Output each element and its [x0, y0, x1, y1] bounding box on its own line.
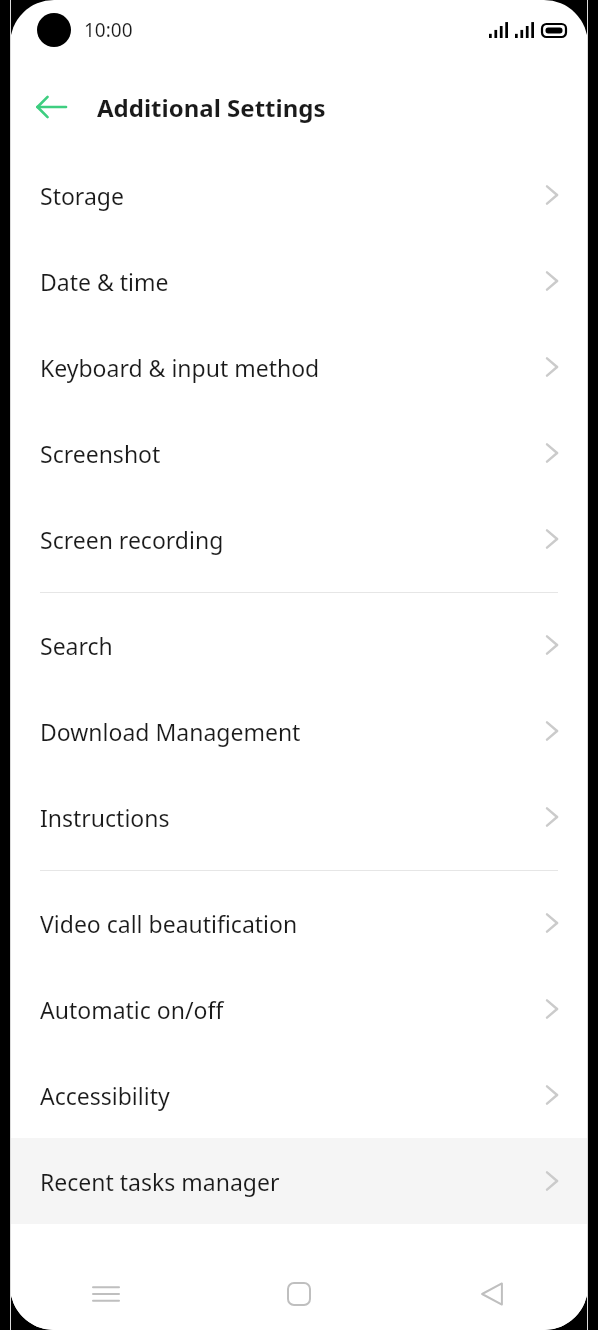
button[interactable]: Screen recording — [10, 496, 588, 582]
button[interactable]: Recent tasks manager — [10, 1138, 588, 1224]
button[interactable]: Video call beautification — [10, 880, 588, 966]
staticText: Keyboard & input method — [40, 352, 546, 383]
button[interactable]: Back — [26, 82, 76, 132]
button[interactable]: Instructions — [10, 774, 588, 860]
button[interactable]: Download Management — [10, 688, 588, 774]
button[interactable]: Keyboard & input method — [10, 324, 588, 410]
staticText: Additional Settings — [97, 91, 326, 124]
staticText: Instructions — [40, 802, 546, 833]
button[interactable]: Date & time — [10, 238, 588, 324]
button[interactable]: Recents — [10, 1258, 202, 1330]
button[interactable]: Accessibility — [10, 1052, 588, 1138]
staticText: Screenshot — [40, 438, 546, 469]
staticText: Automatic on/off — [40, 994, 546, 1025]
button[interactable]: Screenshot — [10, 410, 588, 496]
button[interactable]: Back — [395, 1258, 588, 1330]
button[interactable]: Automatic on/off — [10, 966, 588, 1052]
staticText: Accessibility — [40, 1080, 546, 1111]
staticText: 10:00 — [84, 17, 133, 43]
staticText: Recent tasks manager — [40, 1166, 546, 1197]
staticText: Video call beautification — [40, 908, 546, 939]
button[interactable]: Storage — [10, 152, 588, 238]
staticText: Download Management — [40, 716, 546, 747]
staticText: Date & time — [40, 266, 546, 297]
button[interactable]: Search — [10, 602, 588, 688]
button[interactable]: Home — [202, 1258, 395, 1330]
staticText: Storage — [40, 180, 546, 211]
staticText: Screen recording — [40, 524, 546, 555]
staticText: Search — [40, 630, 546, 661]
